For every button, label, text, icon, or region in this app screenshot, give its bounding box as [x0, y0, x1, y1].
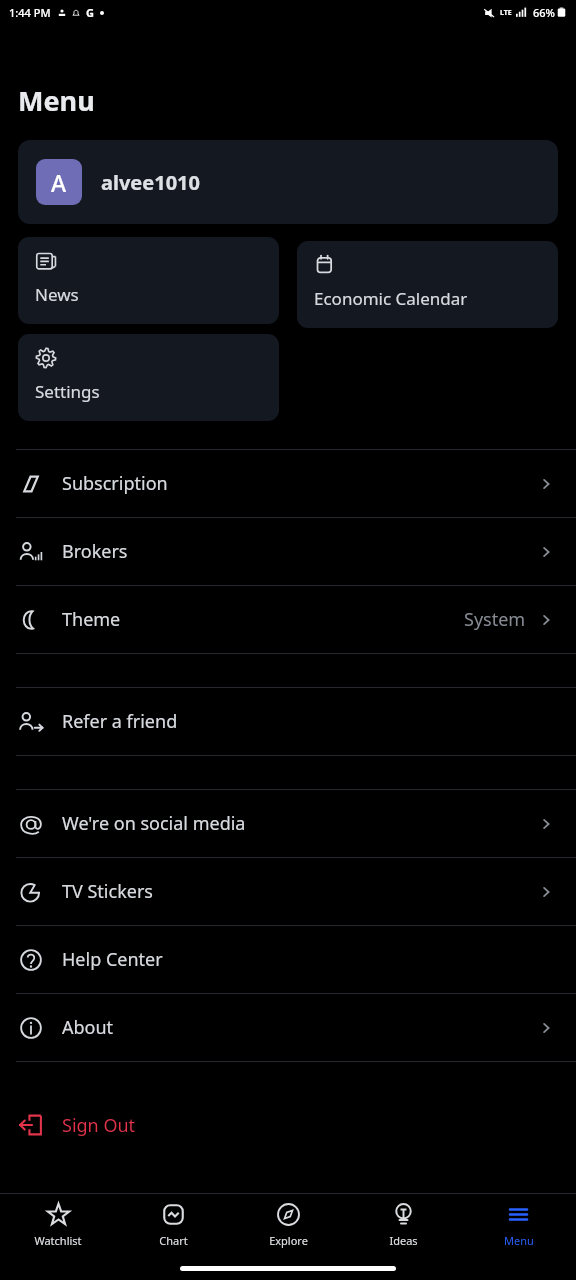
button[interactable]: Theme — [0, 586, 576, 653]
staticText: Theme — [62, 607, 121, 632]
staticText: Brokers — [62, 539, 128, 564]
staticText: 66% — [533, 5, 555, 20]
staticText: Menu — [18, 82, 95, 119]
staticText: LTE — [500, 8, 512, 18]
button[interactable]: TV Stickers — [0, 858, 576, 925]
button[interactable]: We're on social media — [0, 790, 576, 857]
staticText: alvee1010 — [101, 169, 200, 196]
button[interactable]: Watchlist — [0, 1202, 116, 1248]
staticText: A — [51, 167, 67, 198]
button[interactable]: Settings — [18, 334, 279, 421]
staticText: Subscription — [62, 471, 168, 496]
staticText: Explore — [269, 1233, 308, 1248]
staticText: Economic Calendar — [314, 287, 468, 310]
button[interactable]: Refer a friend — [0, 688, 576, 755]
button[interactable]: News — [18, 237, 279, 324]
other: Settings — [35, 347, 57, 369]
button[interactable]: Menu — [461, 1202, 576, 1248]
button[interactable]: Subscription — [0, 450, 576, 517]
button[interactable]: Explore — [231, 1202, 346, 1248]
staticText: Refer a friend — [62, 709, 178, 734]
staticText: Help Center — [62, 947, 163, 972]
button[interactable]: About — [0, 994, 576, 1061]
other: News — [35, 250, 57, 272]
staticText: Chart — [159, 1233, 188, 1248]
staticText: News — [35, 283, 79, 306]
staticText: We're on social media — [62, 811, 246, 836]
staticText: 1:44 PM — [9, 5, 51, 20]
staticText: Ideas — [389, 1233, 418, 1248]
button[interactable]: Sign Out — [0, 1095, 576, 1155]
staticText: G — [86, 5, 94, 20]
button[interactable]: A — [18, 140, 558, 224]
button[interactable]: Help Center — [0, 926, 576, 993]
staticText: About — [62, 1015, 114, 1040]
button[interactable]: Ideas — [346, 1202, 461, 1248]
staticText: System — [464, 607, 526, 632]
button[interactable]: Brokers — [0, 518, 576, 585]
staticText: Sign Out — [62, 1113, 136, 1138]
button[interactable]: Economic Calendar — [297, 241, 558, 328]
staticText: TV Stickers — [62, 879, 153, 904]
staticText: Watchlist — [34, 1233, 82, 1248]
other: Economic Calendar — [314, 254, 336, 276]
staticText: Menu — [504, 1233, 534, 1248]
staticText: Settings — [35, 380, 100, 403]
button[interactable]: Chart — [116, 1202, 231, 1248]
